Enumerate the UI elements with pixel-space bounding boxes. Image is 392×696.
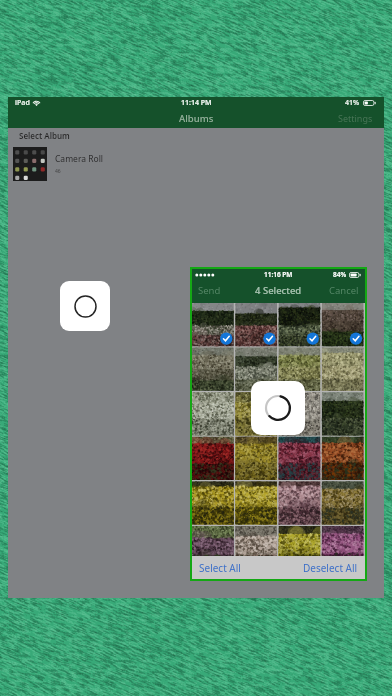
staticText: 84%	[333, 270, 347, 279]
staticText: 41%	[345, 98, 360, 108]
other: Loading	[60, 281, 110, 331]
button[interactable]: Deselect All	[303, 561, 358, 575]
staticText: 11:14 PM	[181, 98, 212, 108]
button[interactable]: Send	[198, 284, 221, 297]
button[interactable]: Camera Roll	[8, 142, 384, 185]
staticText: iPad	[15, 98, 30, 108]
staticText: Albums	[179, 112, 214, 125]
staticText: 4 Selected	[255, 284, 302, 297]
other: Loading	[251, 381, 305, 435]
staticText: Camera Roll	[55, 153, 104, 165]
staticText: Select Album	[19, 130, 70, 141]
button[interactable]: Cancel	[329, 284, 359, 297]
staticText: 11:16 PM	[264, 270, 293, 279]
staticText: 46	[55, 168, 61, 175]
button[interactable]: Settings	[338, 112, 373, 124]
button[interactable]: Select All	[199, 561, 241, 575]
